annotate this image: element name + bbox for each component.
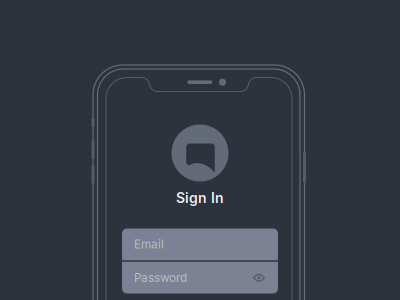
staticText: Sign In [176, 189, 224, 206]
staticText: Password [134, 271, 187, 285]
button[interactable]: Password [122, 262, 278, 294]
button[interactable]: Email [122, 228, 278, 260]
staticText: Email [134, 237, 164, 251]
